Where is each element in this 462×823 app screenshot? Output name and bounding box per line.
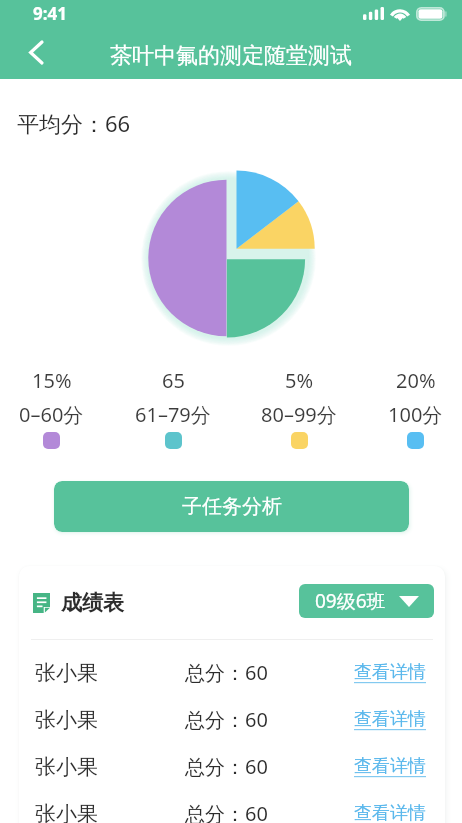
staticText: 20% (396, 367, 436, 394)
staticText: 平均分：66 (17, 108, 131, 138)
button[interactable]: 张小果 (19, 743, 445, 790)
staticText: 总分：60 (185, 753, 268, 780)
staticText: 子任务分析 (182, 494, 282, 519)
staticText: 查看详情 (354, 661, 426, 684)
staticText: 0–60分 (19, 401, 84, 428)
staticText: 总分：60 (185, 706, 268, 733)
staticText: 5% (285, 367, 314, 394)
button[interactable]: 张小果 (19, 790, 445, 823)
staticText: 茶叶中氟的测定随堂测试 (110, 42, 352, 70)
staticText: 9:41 (33, 2, 67, 25)
staticText: 65 (162, 367, 185, 394)
staticText: 查看详情 (354, 755, 426, 778)
staticText: 15% (32, 367, 72, 394)
staticText: 100分 (388, 401, 443, 428)
staticText: 总分：60 (185, 800, 268, 823)
button[interactable]: 子任务分析 (54, 481, 409, 532)
staticText: 总分：60 (185, 659, 268, 686)
button[interactable]: 09级6班 (299, 584, 434, 618)
staticText: 80–99分 (261, 401, 337, 428)
button[interactable]: 张小果 (19, 696, 445, 743)
staticText: 张小果 (35, 754, 98, 780)
staticText: 查看详情 (354, 708, 426, 731)
staticText: 09级6班 (315, 588, 386, 614)
staticText: 查看详情 (354, 802, 426, 823)
staticText: 张小果 (35, 801, 98, 823)
button[interactable]: Back (10, 27, 60, 77)
staticText: 成绩表 (61, 590, 124, 616)
button[interactable]: 张小果 (19, 649, 445, 696)
staticText: 张小果 (35, 660, 98, 686)
staticText: 61–79分 (135, 401, 211, 428)
staticText: 张小果 (35, 707, 98, 733)
